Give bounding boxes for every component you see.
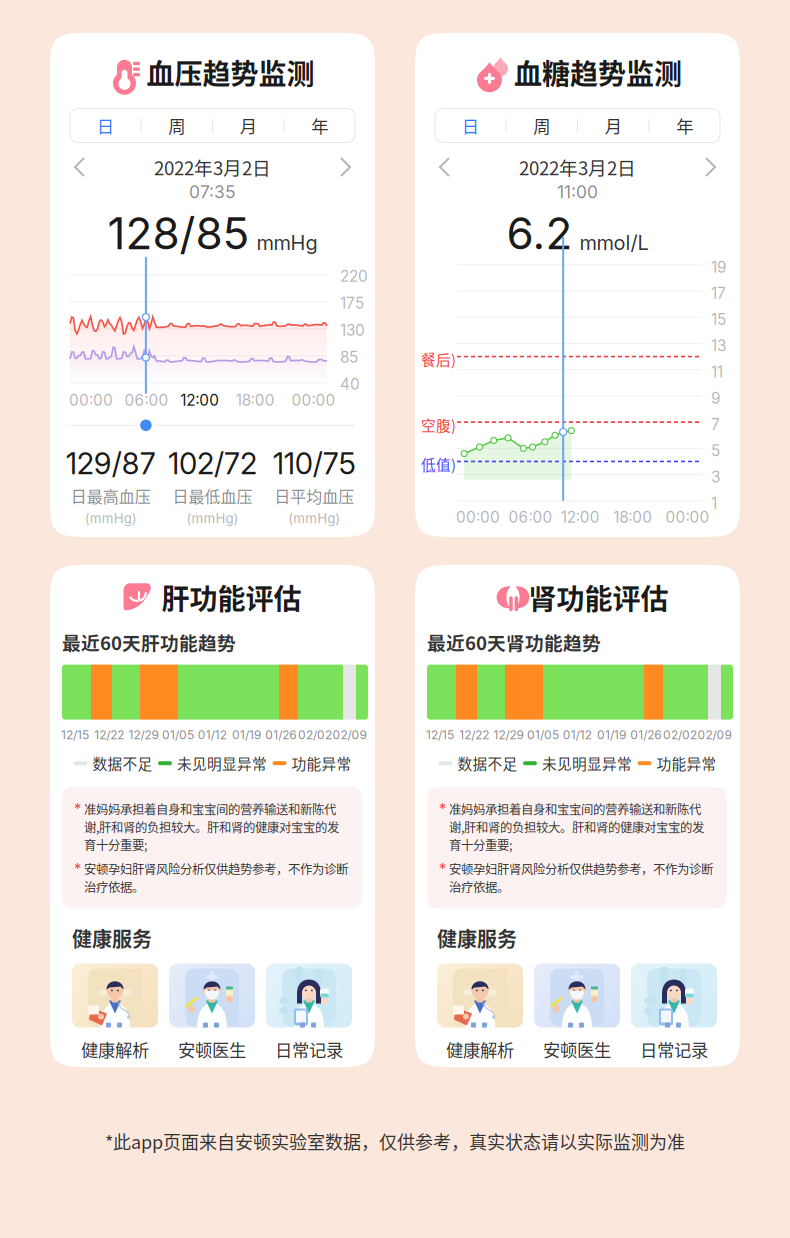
staticText: 85 (340, 348, 358, 366)
staticText: 12:00 (180, 391, 219, 409)
staticText: 日常记录 (640, 1036, 708, 1062)
staticText: 健康服务 (72, 924, 152, 953)
button[interactable]: 健康解析 (72, 963, 158, 1062)
staticText: 40 (340, 375, 360, 393)
staticText: 低值) (421, 453, 456, 475)
staticText: * (74, 800, 81, 817)
staticText: 血压趋势监测 (146, 52, 314, 92)
staticText: 02/09 (697, 728, 731, 742)
staticText: 01/05 (527, 728, 559, 742)
staticText: 准妈妈承担着自身和宝宝间的营养输送和新陈代谢,肝和肾的负担较大。肝和肾的健康对宝… (449, 800, 704, 854)
staticText: 未见明显异常 (542, 753, 632, 774)
staticText: 12/29 (129, 728, 159, 742)
staticText: * (74, 860, 81, 877)
staticText: (mmHg) (85, 510, 137, 526)
staticText: 7 (711, 415, 720, 434)
staticText: 6.2 (506, 206, 572, 260)
staticText: 11 (711, 363, 723, 381)
staticText: 110/75 (273, 446, 356, 481)
staticText: 18:00 (613, 508, 652, 526)
staticText: 9 (711, 389, 721, 407)
button[interactable]: Next day (338, 156, 353, 178)
button[interactable]: Previous day (72, 156, 87, 178)
staticText: 01/12 (198, 728, 227, 742)
staticText: 最近60天肝功能趋势 (62, 628, 236, 655)
staticText: 01/12 (563, 728, 592, 742)
button[interactable]: 月 (213, 108, 283, 142)
staticText: 2022年3月2日 (154, 153, 271, 180)
staticText: 1 (711, 494, 717, 512)
staticText: 周 (168, 113, 185, 138)
staticText: 102/72 (168, 446, 257, 481)
staticText: 日常记录 (275, 1036, 343, 1062)
staticText: 日最低血压 (172, 484, 252, 507)
button[interactable]: 周 (506, 108, 577, 142)
staticText: 年 (676, 113, 693, 138)
staticText: 175 (340, 294, 364, 312)
staticText: 日 (97, 113, 114, 138)
staticText: 肝功能评估 (161, 577, 301, 617)
button[interactable]: 年 (649, 108, 720, 142)
staticText: 安顿孕妇肝肾风险分析仅供趋势参考，不作为诊断治疗依据。 (84, 860, 348, 896)
staticText: 12/15 (61, 728, 89, 742)
staticText: 数据不足 (457, 753, 517, 774)
staticText: 健康解析 (446, 1036, 514, 1062)
staticText: 06:00 (508, 508, 552, 526)
staticText: 月 (605, 113, 622, 138)
staticText: 01/19 (232, 728, 261, 742)
button[interactable]: 周 (141, 108, 212, 142)
staticText: 未见明显异常 (177, 753, 267, 774)
button[interactable]: 日常记录 (266, 963, 352, 1062)
staticText: mmHg (256, 231, 317, 255)
staticText: 血糖趋势监测 (514, 52, 682, 92)
staticText: 日平均血压 (274, 484, 354, 507)
staticText: (mmHg) (186, 510, 238, 526)
staticText: 月 (240, 113, 257, 138)
staticText: 最近60天肾功能趋势 (427, 628, 601, 655)
staticText: 00:00 (456, 508, 500, 526)
staticText: 年 (311, 113, 328, 138)
button[interactable]: 日 (70, 108, 140, 142)
button[interactable]: 年 (284, 108, 355, 142)
staticText: mmol/L (579, 231, 648, 255)
staticText: 安顿医生 (178, 1036, 246, 1062)
staticText: 12/22 (459, 728, 489, 742)
staticText: 12:00 (561, 508, 600, 526)
button[interactable]: 日 (435, 108, 505, 142)
staticText: (mmHg) (288, 510, 340, 526)
staticText: 日最高血压 (71, 484, 151, 507)
staticText: 12/15 (426, 728, 454, 742)
staticText: 07:35 (189, 182, 236, 203)
staticText: 空腹) (421, 414, 456, 435)
staticText: 01/26 (265, 728, 296, 742)
button[interactable]: 健康解析 (437, 963, 523, 1062)
staticText: 2022年3月2日 (519, 153, 636, 180)
staticText: 01/26 (630, 728, 661, 742)
staticText: *此app页面来自安顿实验室数据，仅供参考，真实状态请以实际监测为准 (105, 1128, 685, 1154)
staticText: 06:00 (125, 391, 169, 409)
staticText: 准妈妈承担着自身和宝宝间的营养输送和新陈代谢,肝和肾的负担较大。肝和肾的健康对宝… (84, 800, 339, 854)
button[interactable]: 日常记录 (631, 963, 717, 1062)
staticText: * (439, 800, 446, 817)
staticText: 220 (340, 267, 368, 285)
staticText: 00:00 (291, 391, 335, 409)
button[interactable]: Next day (703, 156, 718, 178)
staticText: 功能异常 (291, 753, 351, 774)
staticText: * (439, 860, 446, 877)
staticText: 功能异常 (656, 753, 716, 774)
staticText: 00:00 (666, 508, 710, 526)
staticText: 5 (711, 441, 720, 460)
staticText: 17 (711, 284, 726, 303)
staticText: 19 (711, 258, 727, 276)
staticText: 01/05 (162, 728, 194, 742)
staticText: 13 (711, 336, 726, 355)
staticText: 00:00 (69, 391, 113, 409)
button[interactable]: 安顿医生 (169, 963, 255, 1062)
button[interactable]: 月 (578, 108, 648, 142)
staticText: 安顿医生 (543, 1036, 611, 1062)
button[interactable]: Previous day (437, 156, 452, 178)
staticText: 周 (533, 113, 550, 138)
staticText: 12/22 (94, 728, 124, 742)
staticText: 肾功能评估 (528, 577, 668, 617)
button[interactable]: 安顿医生 (534, 963, 620, 1062)
